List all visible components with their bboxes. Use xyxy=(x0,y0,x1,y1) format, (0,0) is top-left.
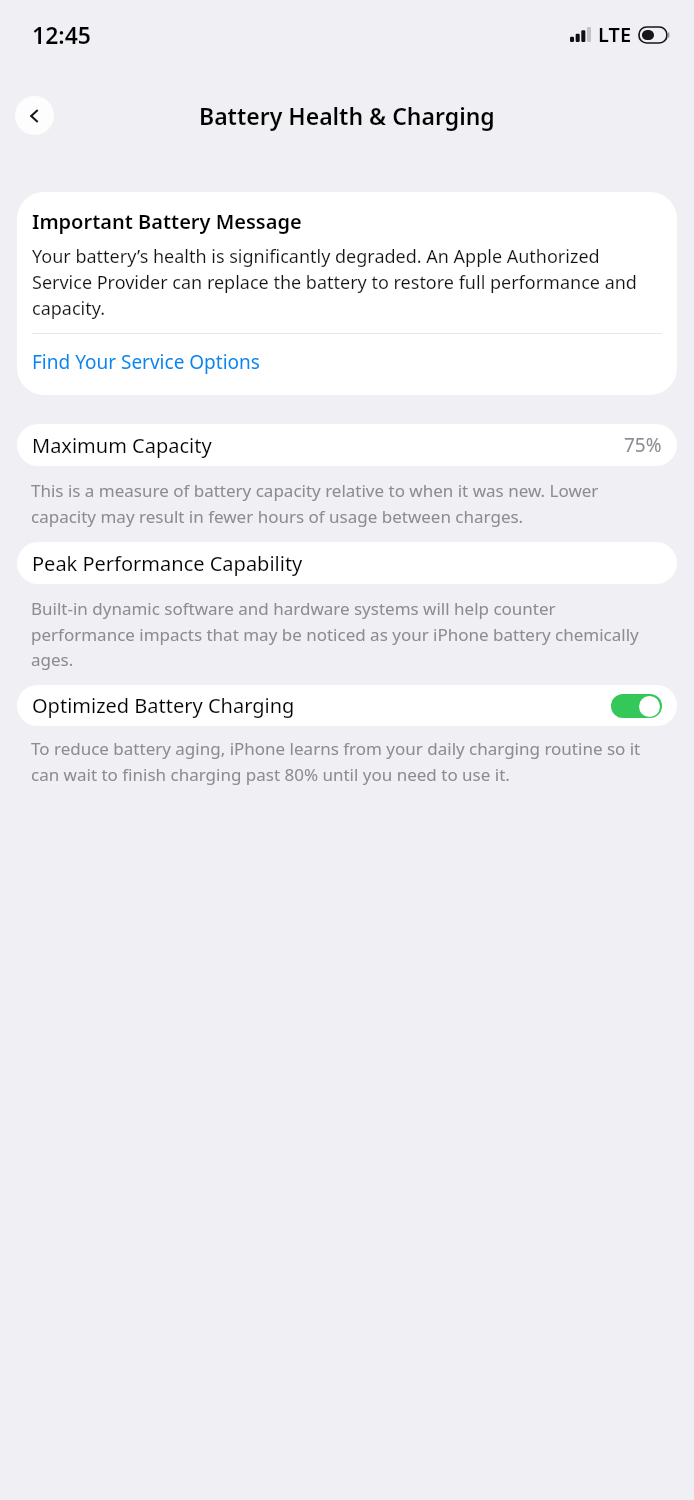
staticText: Optimized Battery Charging xyxy=(32,692,295,719)
button[interactable]: Find Your Service Options xyxy=(32,334,662,377)
staticText: Battery Health & Charging xyxy=(199,100,495,131)
button[interactable]: Peak Performance Capability xyxy=(17,542,677,584)
staticText: Maximum Capacity xyxy=(32,432,212,459)
staticText: This is a measure of battery capacity re… xyxy=(31,479,663,528)
staticText: To reduce battery aging, iPhone learns f… xyxy=(31,737,663,786)
button[interactable]: Back xyxy=(15,96,54,135)
button[interactable]: Maximum Capacity xyxy=(17,424,677,466)
staticText: Peak Performance Capability xyxy=(32,550,303,577)
button[interactable]: Important Battery Message xyxy=(17,192,677,395)
staticText: Built-in dynamic software and hardware s… xyxy=(31,597,663,671)
staticText: 75% xyxy=(624,432,662,458)
button[interactable]: Optimized Battery Charging toggle xyxy=(611,694,662,718)
staticText: Find Your Service Options xyxy=(32,349,260,375)
button[interactable]: Optimized Battery Charging xyxy=(17,685,677,726)
staticText: 12:45 xyxy=(32,19,91,50)
staticText: Important Battery Message xyxy=(32,208,302,235)
staticText: Your battery’s health is significantly d… xyxy=(32,244,662,321)
staticText: LTE xyxy=(598,21,632,48)
